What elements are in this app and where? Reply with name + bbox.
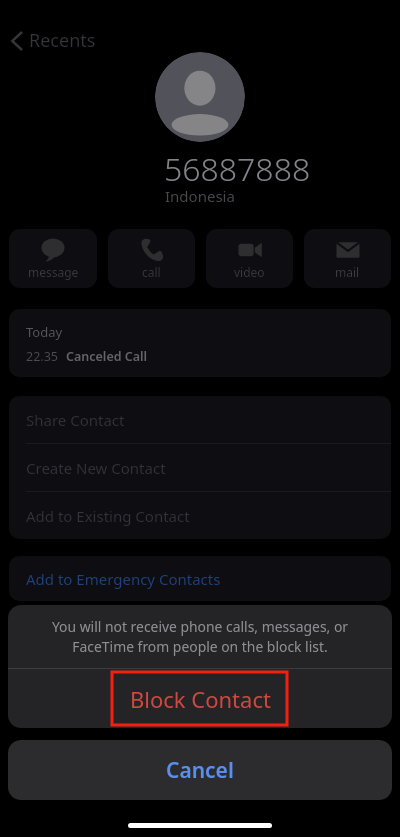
button[interactable]: Add to Emergency Contacts [9,556,391,601]
staticText: Cancel [166,756,234,785]
button[interactable]: Add to Existing Contact [9,492,391,539]
staticText: Add to Emergency Contacts [26,569,221,589]
button[interactable]: Create New Contact [9,444,391,492]
staticText: You will not receive phone calls, messag… [28,617,372,656]
button[interactable]: Share Contact [9,396,391,444]
staticText: Create New Contact [26,458,166,478]
staticText: Add to Existing Contact [26,506,190,526]
staticText: video [234,264,265,280]
staticText: mail [335,264,360,280]
button[interactable]: call [108,229,195,288]
button[interactable]: mail [304,229,391,288]
button[interactable]: message [9,229,97,288]
button[interactable]: Recents [8,26,99,55]
staticText: call [142,264,161,280]
staticText: Share Contact [26,410,125,430]
staticText: 22.35 [26,348,58,365]
button[interactable]: Block Contact [8,669,392,728]
staticText: Block Contact [130,684,271,714]
staticText: Canceled Call [66,348,148,365]
button[interactable]: video [206,229,293,288]
staticText: Today [26,323,63,341]
staticText: Indonesia [165,186,235,206]
staticText: Recents [29,28,96,53]
staticText: 56887888 [164,147,311,191]
staticText: message [28,264,79,280]
button[interactable]: Cancel [8,740,392,800]
